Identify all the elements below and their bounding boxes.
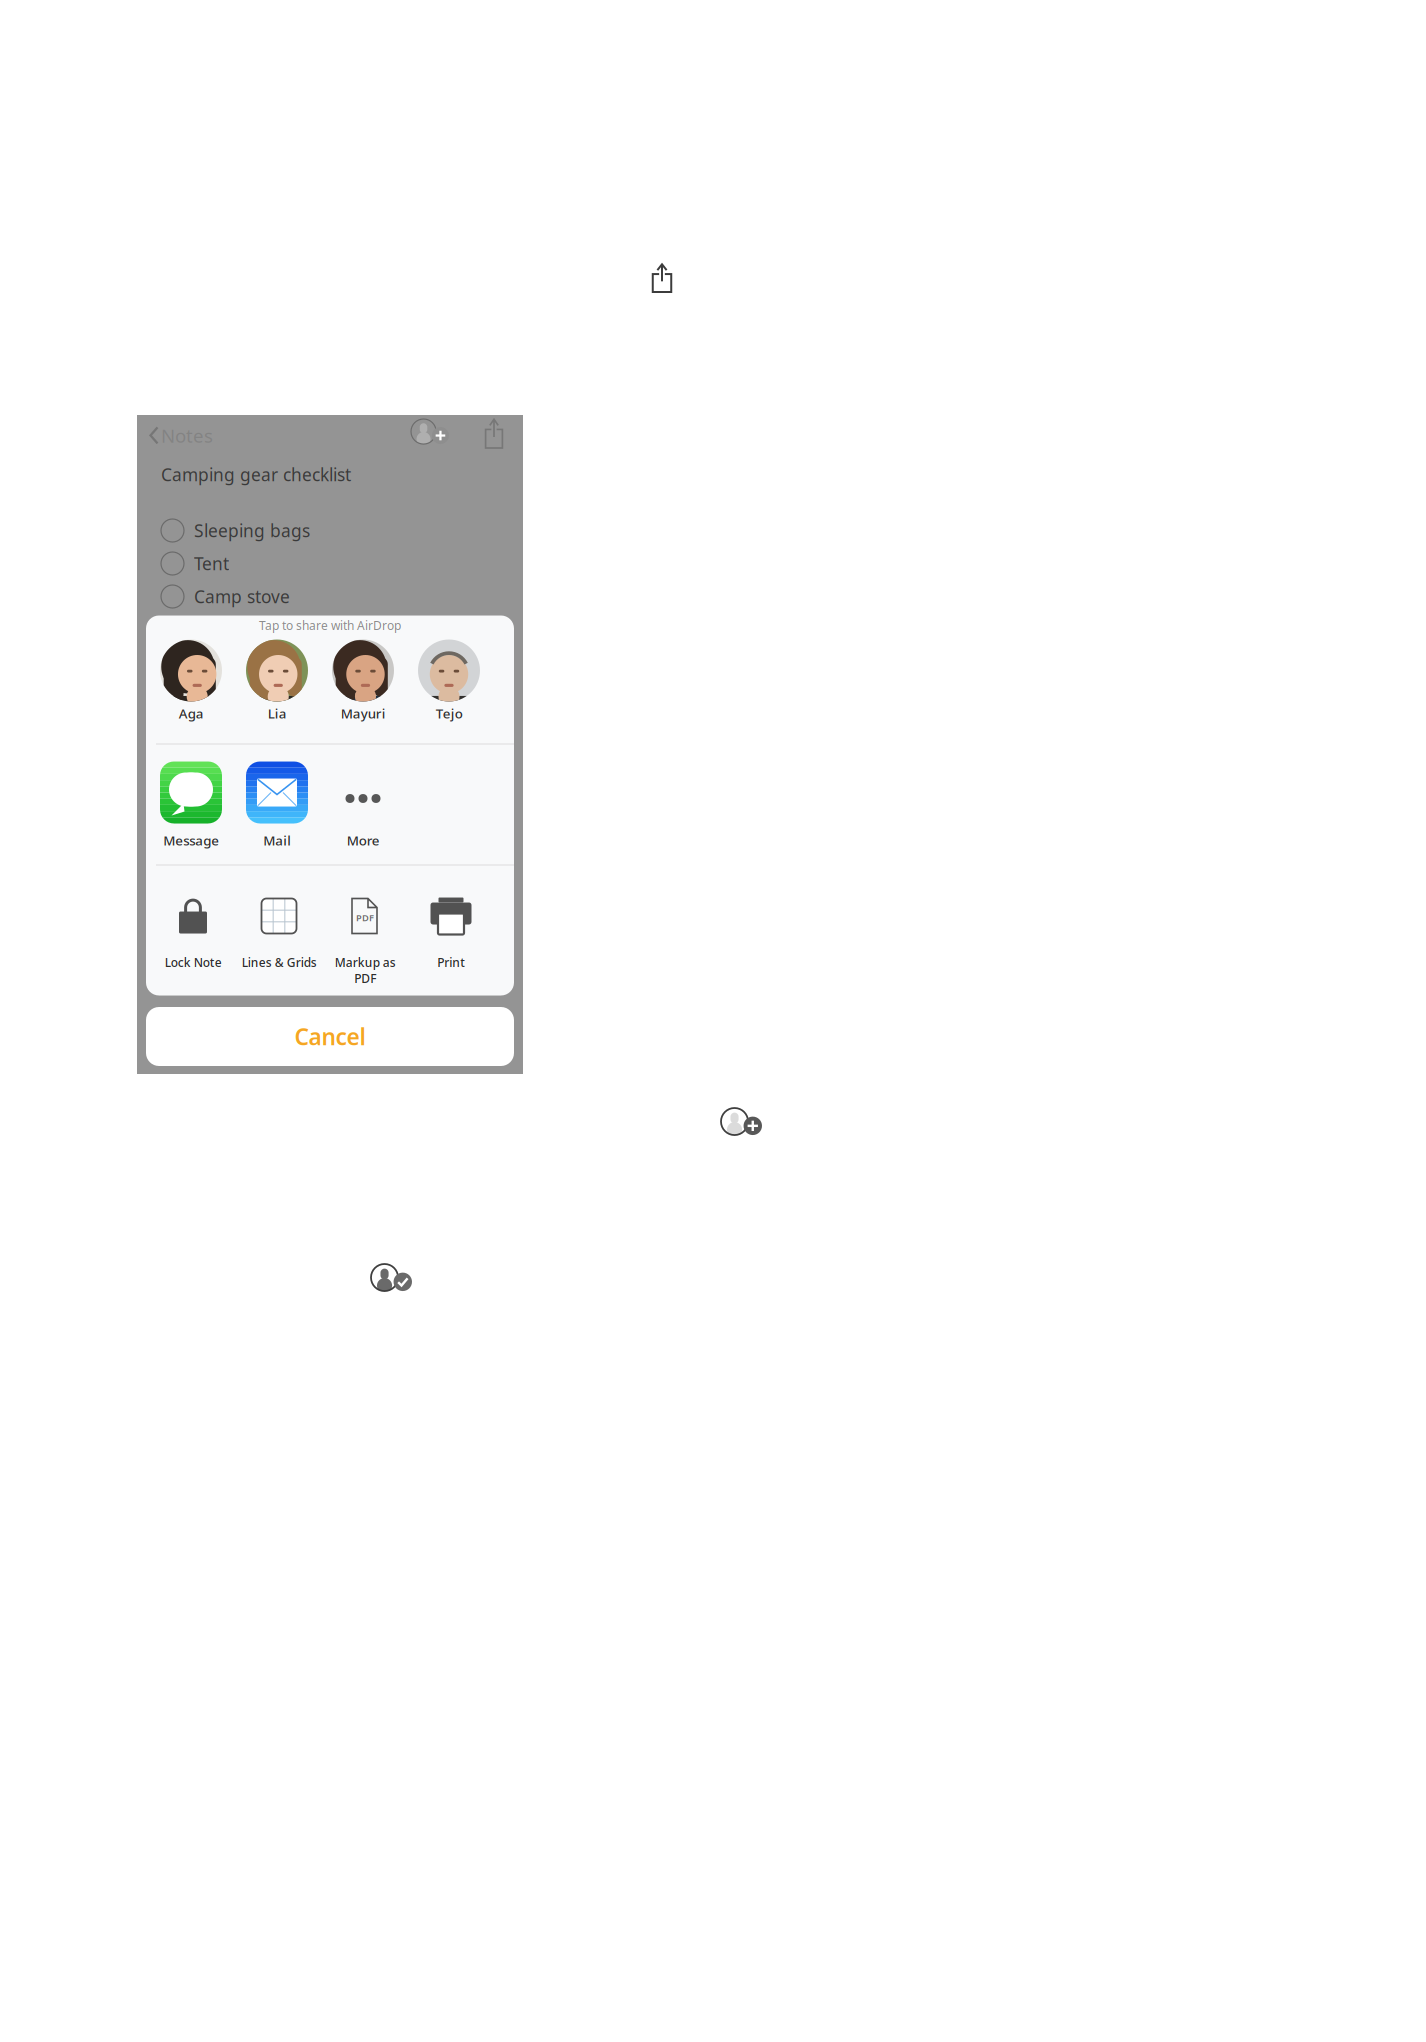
button[interactable]: Cancel (146, 1007, 514, 1066)
staticText: Cancel (294, 1021, 365, 1051)
staticText: Lia (267, 704, 286, 722)
staticText: Lines & Grids (241, 954, 316, 970)
button[interactable]: More (320, 761, 406, 857)
button[interactable]: Print (408, 896, 494, 998)
staticText: More (346, 831, 379, 849)
button[interactable]: Mayuri (320, 639, 406, 735)
staticText: Camp stove (194, 585, 290, 608)
staticText: Markup as PDF (334, 954, 395, 986)
staticText: Camping gear checklist (161, 463, 351, 486)
button[interactable]: Aga (148, 639, 234, 735)
staticText: Sleeping bags (194, 519, 310, 542)
staticText: Notes (161, 423, 213, 448)
button[interactable]: Lia (234, 639, 320, 735)
staticText: Lock Note (164, 954, 221, 970)
button[interactable]: PDF (322, 896, 408, 998)
button[interactable]: Notes (149, 423, 213, 448)
staticText: Message (163, 831, 219, 849)
button[interactable]: Tejo (406, 639, 492, 735)
staticText: Tent (194, 552, 229, 575)
staticText: Tejo (435, 704, 462, 722)
staticText: Mail (263, 831, 291, 849)
staticText: Mayuri (340, 704, 385, 722)
button[interactable]: Lock Note (150, 896, 236, 998)
button[interactable]: Lines & Grids (236, 896, 322, 998)
staticText: Print (437, 954, 465, 970)
staticText: Aga (178, 704, 203, 722)
staticText: Tap to share with AirDrop (259, 617, 401, 633)
button[interactable]: Message (148, 761, 234, 857)
staticText: PDF (356, 911, 374, 924)
button[interactable]: Share (484, 419, 504, 448)
button[interactable]: Add people (411, 419, 449, 444)
button[interactable]: Mail (234, 761, 320, 857)
